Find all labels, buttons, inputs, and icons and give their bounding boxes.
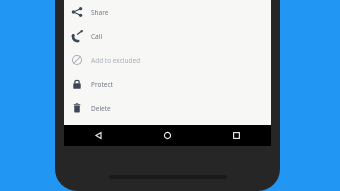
button[interactable]: Share: [64, 0, 271, 24]
button[interactable]: Delete: [64, 96, 271, 120]
button[interactable]: Add to excluded: [64, 48, 271, 72]
staticText: Add to excluded: [91, 56, 141, 65]
staticText: Protect: [91, 80, 113, 89]
button[interactable]: Home: [133, 125, 202, 146]
button[interactable]: Call: [64, 24, 271, 48]
staticText: Delete: [91, 104, 111, 113]
button[interactable]: Back: [64, 125, 133, 146]
staticText: Call: [91, 32, 103, 41]
staticText: Share: [91, 8, 109, 17]
button[interactable]: Recent apps: [202, 125, 271, 146]
button[interactable]: Protect: [64, 72, 271, 96]
